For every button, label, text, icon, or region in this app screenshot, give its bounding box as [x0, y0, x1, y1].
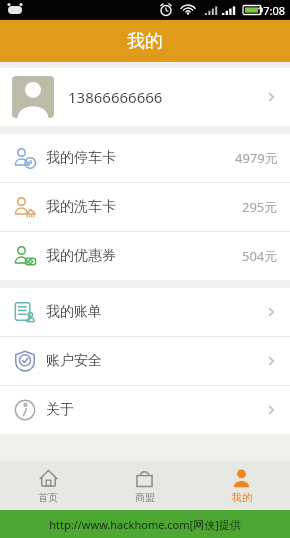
- staticText: 商盟: [135, 491, 155, 504]
- staticText: 我的洗车卡: [46, 198, 116, 216]
- button[interactable]: 我的停车卡: [0, 134, 290, 182]
- button[interactable]: 我的: [193, 461, 290, 510]
- staticText: 关于: [46, 401, 74, 419]
- staticText: 我的: [232, 491, 252, 504]
- button[interactable]: 我的优惠券: [0, 232, 290, 280]
- button[interactable]: 账户安全: [0, 337, 290, 385]
- staticText: 504元: [242, 247, 278, 265]
- staticText: 我的优惠券: [46, 247, 116, 265]
- button[interactable]: 关于: [0, 386, 290, 434]
- staticText: 我的账单: [46, 303, 102, 321]
- staticText: 首页: [38, 491, 58, 504]
- staticText: 295元: [242, 198, 278, 216]
- staticText: 我的停车卡: [46, 149, 116, 167]
- button[interactable]: 我的账单: [0, 288, 290, 336]
- button[interactable]: 13866666666: [0, 68, 290, 126]
- button[interactable]: 商盟: [96, 461, 193, 510]
- button[interactable]: 我的洗车卡: [0, 183, 290, 231]
- staticText: 账户安全: [46, 352, 102, 370]
- staticText: 我的: [127, 30, 163, 53]
- staticText: 4979元: [235, 149, 278, 167]
- button[interactable]: 首页: [0, 461, 96, 510]
- staticText: 17:08: [257, 3, 286, 18]
- staticText: 13866666666: [68, 87, 163, 107]
- staticText: http://www.hackhome.com[网侠]提供: [49, 517, 241, 532]
